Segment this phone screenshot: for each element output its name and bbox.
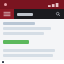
button[interactable]: Home (2, 61, 4, 63)
button[interactable]: Search (54, 10, 62, 18)
button[interactable]: Menu (0, 9, 14, 19)
button[interactable] (3, 40, 61, 44)
